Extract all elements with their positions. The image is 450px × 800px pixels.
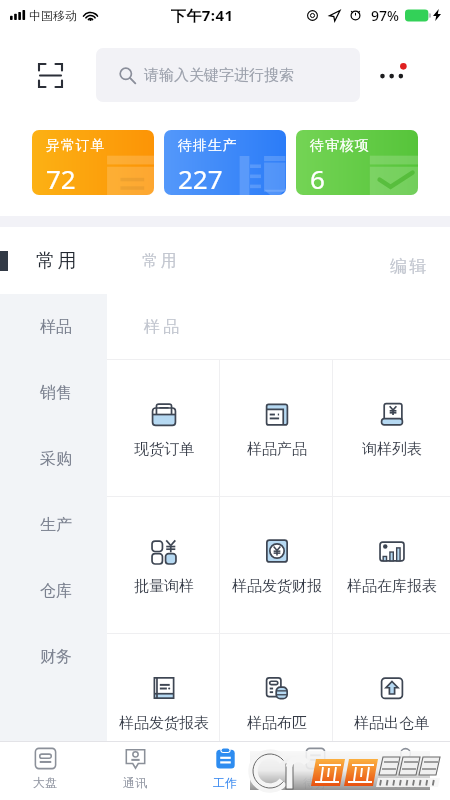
staticText: 中国移动 — [29, 8, 77, 23]
button[interactable]: 现货订单 — [107, 360, 220, 496]
button[interactable]: 销售 — [0, 360, 107, 426]
staticText: 72 — [46, 161, 76, 195]
button[interactable]: 样品发货报表 — [107, 634, 220, 741]
button[interactable]: 通讯 — [90, 742, 180, 800]
staticText: 批量询样 — [134, 577, 194, 596]
button[interactable]: 工作 — [180, 742, 270, 800]
staticText: 待审核项 — [310, 137, 370, 155]
staticText: 现货订单 — [134, 440, 194, 459]
button[interactable]: 询样列表 — [333, 360, 450, 496]
button[interactable]: 更多 — [376, 57, 412, 93]
button[interactable]: 采购 — [0, 426, 107, 492]
staticText: 大盘 — [33, 775, 57, 790]
button[interactable]: 样品发货财报 — [220, 497, 333, 633]
button[interactable]: 生产 — [0, 492, 107, 558]
button[interactable]: 常用 — [0, 233, 107, 288]
staticText: 常用 — [36, 249, 80, 273]
staticText: 财务 — [40, 647, 72, 667]
staticText: 请输入关键字进行搜索 — [144, 66, 294, 85]
button[interactable]: 样品 — [0, 294, 107, 360]
button[interactable]: 待审核项 — [296, 130, 418, 195]
button[interactable]: 请输入关键字进行搜索 — [96, 48, 360, 102]
staticText: 采购 — [40, 449, 72, 469]
button[interactable]: 批量询样 — [107, 497, 220, 633]
staticText: 样品 — [40, 317, 72, 337]
staticText: 97% — [371, 6, 399, 25]
staticText: 样品布匹 — [247, 714, 307, 733]
button[interactable]: 仓库 — [0, 558, 107, 624]
staticText: 227 — [178, 161, 223, 195]
button[interactable]: 我的 — [360, 742, 450, 800]
staticText: 待办 — [303, 775, 327, 790]
staticText: 常用 — [142, 251, 180, 271]
staticText: 样品发货财报 — [232, 577, 322, 596]
staticText: 待排生产 — [178, 137, 238, 155]
button[interactable]: 财务 — [0, 624, 107, 690]
button[interactable]: 待排生产 — [164, 130, 286, 195]
staticText: 样品出仓单 — [354, 714, 429, 733]
staticText: 通讯 — [123, 775, 147, 790]
staticText: 仓库 — [40, 581, 72, 601]
staticText: 下午7:41 — [171, 5, 234, 25]
staticText: 销售 — [40, 383, 72, 403]
button[interactable]: 样品出仓单 — [333, 634, 450, 741]
button[interactable]: 常用 — [125, 233, 197, 288]
staticText: 询样列表 — [362, 440, 422, 459]
button[interactable]: 异常订单 — [32, 130, 154, 195]
staticText: 生产 — [40, 515, 72, 535]
staticText: 样品在库报表 — [347, 577, 437, 596]
staticText: 工作 — [213, 775, 237, 790]
staticText: 样品发货报表 — [119, 714, 209, 733]
button[interactable]: 样品布匹 — [220, 634, 333, 741]
staticText: 样品 — [142, 317, 181, 337]
button[interactable]: 样品在库报表 — [333, 497, 450, 633]
button[interactable]: 扫一扫 — [32, 57, 68, 93]
staticText: 编辑 — [390, 256, 430, 277]
staticText: 6 — [310, 161, 325, 195]
button[interactable]: 大盘 — [0, 742, 90, 800]
staticText: 样品产品 — [247, 440, 307, 459]
button[interactable]: 编辑 — [370, 239, 450, 294]
staticText: 异常订单 — [46, 137, 106, 155]
button[interactable]: 待办 — [270, 742, 360, 800]
button[interactable]: 样品产品 — [220, 360, 333, 496]
staticText: 我的 — [393, 775, 417, 790]
